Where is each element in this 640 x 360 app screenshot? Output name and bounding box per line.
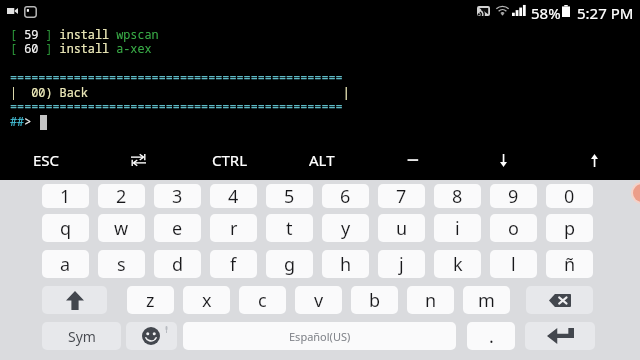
button[interactable]: c [239,286,286,314]
button[interactable]: ESC [0,140,92,180]
button[interactable]: y [322,214,369,242]
button[interactable]: t [266,214,313,242]
button[interactable]: w [98,214,145,242]
staticText: 7 [396,184,407,208]
button[interactable]: q [42,214,89,242]
button[interactable]: Arrow down [458,140,549,180]
staticText: u [396,216,408,241]
staticText: CTRL [212,150,248,170]
staticText: 4 [228,184,239,208]
staticText: x [202,288,212,313]
staticText: ========================================… [10,98,343,114]
staticText: f [230,252,237,277]
button[interactable]: v [295,286,342,314]
staticText: r [230,216,238,241]
button[interactable]: 8 [434,184,481,208]
staticText: 0 [564,184,575,208]
staticText: i [455,216,460,241]
staticText: n [425,288,437,313]
button[interactable]: n [407,286,454,314]
staticText: [ 59 ] install wpscan [10,26,159,42]
staticText: m [478,288,495,313]
staticText: ESC [33,150,60,170]
staticText: Sym [68,327,96,346]
button[interactable]: 9 [490,184,537,208]
button[interactable]: x [183,286,230,314]
staticText: 8 [452,184,463,208]
button[interactable]: e [154,214,201,242]
staticText: 5 [284,184,295,208]
button[interactable]: m [463,286,510,314]
staticText: 58% [531,3,561,23]
button[interactable]: Tab [92,140,184,180]
staticText: p [564,216,576,241]
button[interactable]: Español(US) [183,322,456,350]
button[interactable]: h [322,250,369,278]
staticText: w [114,216,129,241]
staticText: l [511,252,516,277]
button[interactable]: 4 [210,184,257,208]
button[interactable]: 2 [98,184,145,208]
staticText: c [258,288,267,313]
button[interactable]: r [210,214,257,242]
staticText: j [399,252,404,277]
button[interactable]: d [154,250,201,278]
button[interactable]: g [266,250,313,278]
button[interactable]: u [378,214,425,242]
button[interactable]: 7 [378,184,425,208]
staticText: e [172,216,183,241]
staticText: . [489,324,494,349]
button[interactable]: 0 [546,184,593,208]
button[interactable]: ALT [276,140,367,180]
button[interactable]: l [490,250,537,278]
button[interactable]: ñ [546,250,593,278]
button[interactable]: 6 [322,184,369,208]
button[interactable]: k [434,250,481,278]
button[interactable]: z [127,286,174,314]
staticText: h [340,252,352,277]
button[interactable]: f [210,250,257,278]
button[interactable]: b [351,286,398,314]
button[interactable]: Shift [42,286,107,314]
staticText: ALT [309,150,335,170]
button[interactable]: Enter [525,322,595,350]
button[interactable]: 3 [154,184,201,208]
staticText: y [341,216,351,241]
staticText: ##> [10,113,32,129]
button[interactable]: Backspace [526,286,593,314]
button[interactable]: 1 [42,184,89,208]
button[interactable]: . [467,322,515,350]
button[interactable]: p [546,214,593,242]
staticText: 3 [172,184,183,208]
staticText: v [314,288,324,313]
button[interactable]: a [42,250,89,278]
staticText: 6 [340,184,351,208]
button[interactable]: 5 [266,184,313,208]
staticText: | 00) Back | [10,84,350,100]
staticText: ñ [564,252,576,277]
staticText: 1 [60,184,71,208]
button[interactable]: Emoji [126,322,177,350]
staticText: k [453,252,463,277]
staticText: 5:27 PM [577,3,634,23]
staticText: z [146,288,155,313]
staticText: 2 [116,184,127,208]
staticText: ========================================… [10,69,343,85]
button[interactable]: Minus [367,140,458,180]
button[interactable]: o [490,214,537,242]
button[interactable]: CTRL [184,140,276,180]
staticText: [ 60 ] install a-xex [10,40,152,56]
staticText: q [60,216,72,241]
button[interactable]: s [98,250,145,278]
button[interactable]: i [434,214,481,242]
staticText: b [369,288,381,313]
button[interactable]: Arrow up [549,140,640,180]
staticText: a [60,252,71,277]
staticText: o [508,216,519,241]
button[interactable]: j [378,250,425,278]
button[interactable]: Sym [42,322,121,350]
staticText: s [117,252,126,277]
staticText: d [172,252,184,277]
staticText: t [286,216,293,241]
staticText: 9 [508,184,519,208]
